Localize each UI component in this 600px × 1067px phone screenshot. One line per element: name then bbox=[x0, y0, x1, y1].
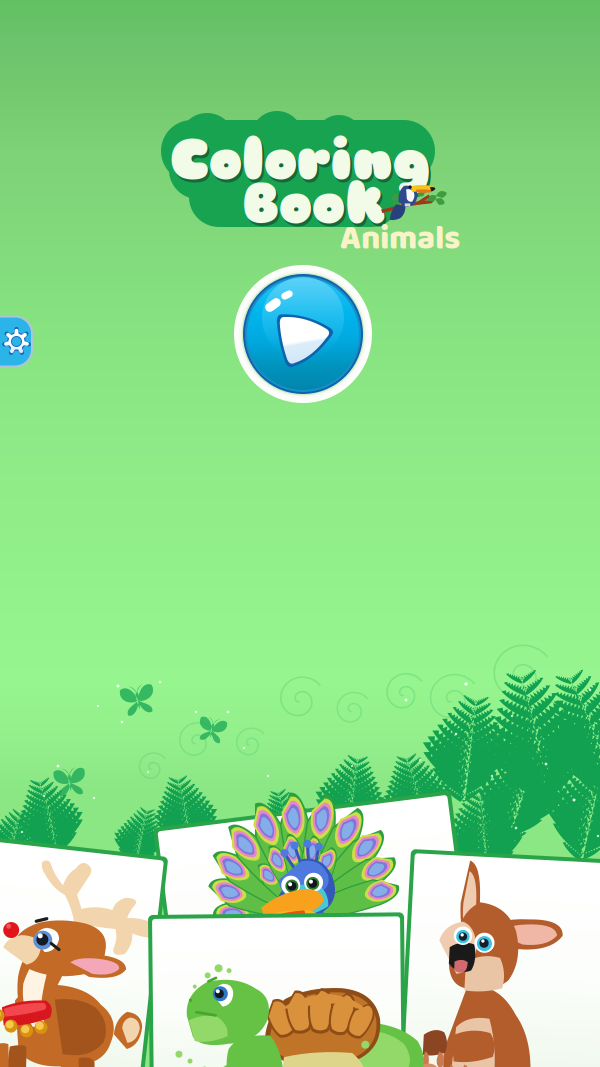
staticText: Animals bbox=[340, 212, 460, 265]
staticText: Coloring bbox=[172, 128, 432, 198]
staticText: Book bbox=[244, 172, 387, 242]
staticText: Coloring bbox=[170, 125, 430, 195]
staticText: Book bbox=[242, 169, 385, 239]
button[interactable]: Play bbox=[230, 261, 376, 407]
button[interactable]: Settings bbox=[0, 316, 33, 368]
